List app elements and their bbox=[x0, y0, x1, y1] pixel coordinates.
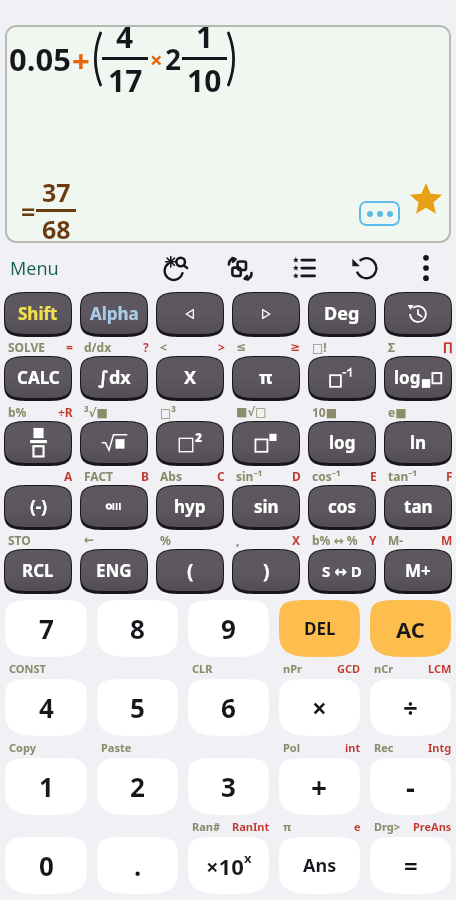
staticText: Alpha bbox=[90, 302, 139, 325]
staticText: = bbox=[404, 849, 418, 882]
button[interactable]: + bbox=[279, 758, 360, 815]
button[interactable] bbox=[157, 293, 223, 334]
button[interactable]: ÷ bbox=[370, 679, 451, 736]
button[interactable]: π bbox=[233, 357, 299, 398]
button[interactable]: ENG bbox=[81, 550, 147, 591]
button[interactable]: Alpha bbox=[81, 293, 147, 334]
button[interactable]: = bbox=[370, 837, 451, 894]
staticText: Ans bbox=[303, 853, 337, 878]
staticText: 1 bbox=[39, 769, 54, 804]
staticText: D bbox=[292, 468, 301, 484]
staticText: E bbox=[370, 468, 377, 484]
button[interactable]: ∫dx bbox=[81, 357, 147, 398]
staticText: 2 bbox=[165, 40, 182, 78]
button[interactable]: Favourite bbox=[409, 183, 443, 217]
button[interactable]: DEL bbox=[279, 600, 360, 657]
staticText: 0.05 bbox=[9, 38, 71, 80]
button[interactable]: 9 bbox=[188, 600, 269, 657]
staticText: GCD bbox=[337, 661, 361, 676]
staticText: M+ bbox=[405, 559, 431, 582]
button[interactable]: Shift bbox=[5, 293, 71, 334]
button[interactable]: ×10 bbox=[188, 837, 269, 894]
staticText: ( bbox=[187, 558, 194, 584]
button[interactable]: ) bbox=[233, 550, 299, 591]
staticText: = bbox=[66, 339, 73, 355]
staticText: tan bbox=[404, 495, 433, 518]
button[interactable]: Deg bbox=[309, 293, 375, 334]
button[interactable]: Ans bbox=[279, 837, 360, 894]
staticText: nPr bbox=[283, 661, 302, 676]
staticText: 9 bbox=[221, 611, 236, 646]
button[interactable]: AC bbox=[370, 600, 451, 657]
button[interactable]: log bbox=[385, 357, 451, 398]
button[interactable]: - bbox=[370, 758, 451, 815]
button[interactable]: sin bbox=[233, 486, 299, 527]
button[interactable]: 2 bbox=[97, 758, 178, 815]
staticText: Copy bbox=[9, 740, 36, 755]
staticText: Rec bbox=[374, 740, 394, 755]
button[interactable]: 1 bbox=[5, 758, 87, 815]
button[interactable]: tan bbox=[385, 486, 451, 527]
button[interactable]: X bbox=[157, 357, 223, 398]
button[interactable]: 0 bbox=[5, 837, 87, 894]
button[interactable]: Magic search bbox=[157, 249, 195, 287]
button[interactable]: 3 bbox=[188, 758, 269, 815]
staticText: × bbox=[312, 690, 327, 725]
button[interactable]: 4 bbox=[5, 679, 87, 736]
button[interactable]: ( bbox=[157, 550, 223, 591]
staticText: Shift bbox=[18, 302, 58, 325]
button[interactable]: More options bbox=[407, 249, 445, 287]
staticText: ÷ bbox=[403, 690, 418, 725]
button[interactable]: hyp bbox=[157, 486, 223, 527]
staticText: Pol bbox=[283, 740, 300, 755]
button[interactable] bbox=[233, 293, 299, 334]
staticText: 10 bbox=[187, 60, 222, 101]
staticText: M- bbox=[388, 532, 404, 548]
button[interactable]: RCL bbox=[5, 550, 71, 591]
staticText: Y bbox=[369, 532, 377, 548]
button[interactable]: 6 bbox=[188, 679, 269, 736]
button[interactable]: Menu bbox=[10, 256, 59, 281]
staticText: ÷R bbox=[58, 404, 73, 420]
button[interactable] bbox=[385, 293, 451, 334]
button[interactable]: 8 bbox=[97, 600, 178, 657]
button[interactable] bbox=[81, 486, 147, 527]
staticText: F bbox=[446, 468, 453, 484]
staticText: cos bbox=[328, 495, 356, 518]
staticText: Paste bbox=[101, 740, 132, 755]
button[interactable]: M+ bbox=[385, 550, 451, 591]
staticText: S ↔ D bbox=[322, 561, 362, 581]
staticText: sin bbox=[254, 495, 279, 518]
staticText: Deg bbox=[324, 301, 360, 326]
staticText: 37 bbox=[42, 175, 71, 209]
staticText: ×10 bbox=[206, 851, 244, 881]
button[interactable]: cos bbox=[309, 486, 375, 527]
staticText: x bbox=[244, 849, 252, 867]
button[interactable]: × bbox=[279, 679, 360, 736]
button[interactable] bbox=[81, 422, 147, 463]
staticText: ³√■ bbox=[84, 404, 108, 420]
button[interactable]: Favourites bbox=[285, 249, 323, 287]
staticText: % bbox=[160, 532, 171, 548]
button[interactable]: ln bbox=[385, 422, 451, 463]
button[interactable]: S ↔ D bbox=[309, 550, 375, 591]
staticText: 17 bbox=[108, 60, 143, 101]
button[interactable]: 5 bbox=[97, 679, 178, 736]
button[interactable]: Convert bbox=[221, 249, 259, 287]
button[interactable]: . bbox=[97, 837, 178, 894]
button[interactable]: (-) bbox=[5, 486, 71, 527]
button[interactable]: CALC bbox=[5, 357, 71, 398]
button[interactable] bbox=[5, 422, 71, 463]
button[interactable]: log bbox=[309, 422, 375, 463]
staticText: 3 bbox=[221, 769, 236, 804]
button[interactable] bbox=[309, 357, 375, 398]
staticText: = bbox=[21, 194, 36, 228]
button[interactable] bbox=[233, 422, 299, 463]
staticText: X bbox=[184, 365, 197, 390]
button[interactable]: Undo bbox=[345, 249, 383, 287]
button[interactable]: 7 bbox=[5, 600, 87, 657]
button[interactable]: More bbox=[359, 201, 400, 226]
staticText: 10■ bbox=[312, 404, 338, 420]
button[interactable]: □² bbox=[157, 422, 223, 463]
staticText: C bbox=[217, 468, 225, 484]
